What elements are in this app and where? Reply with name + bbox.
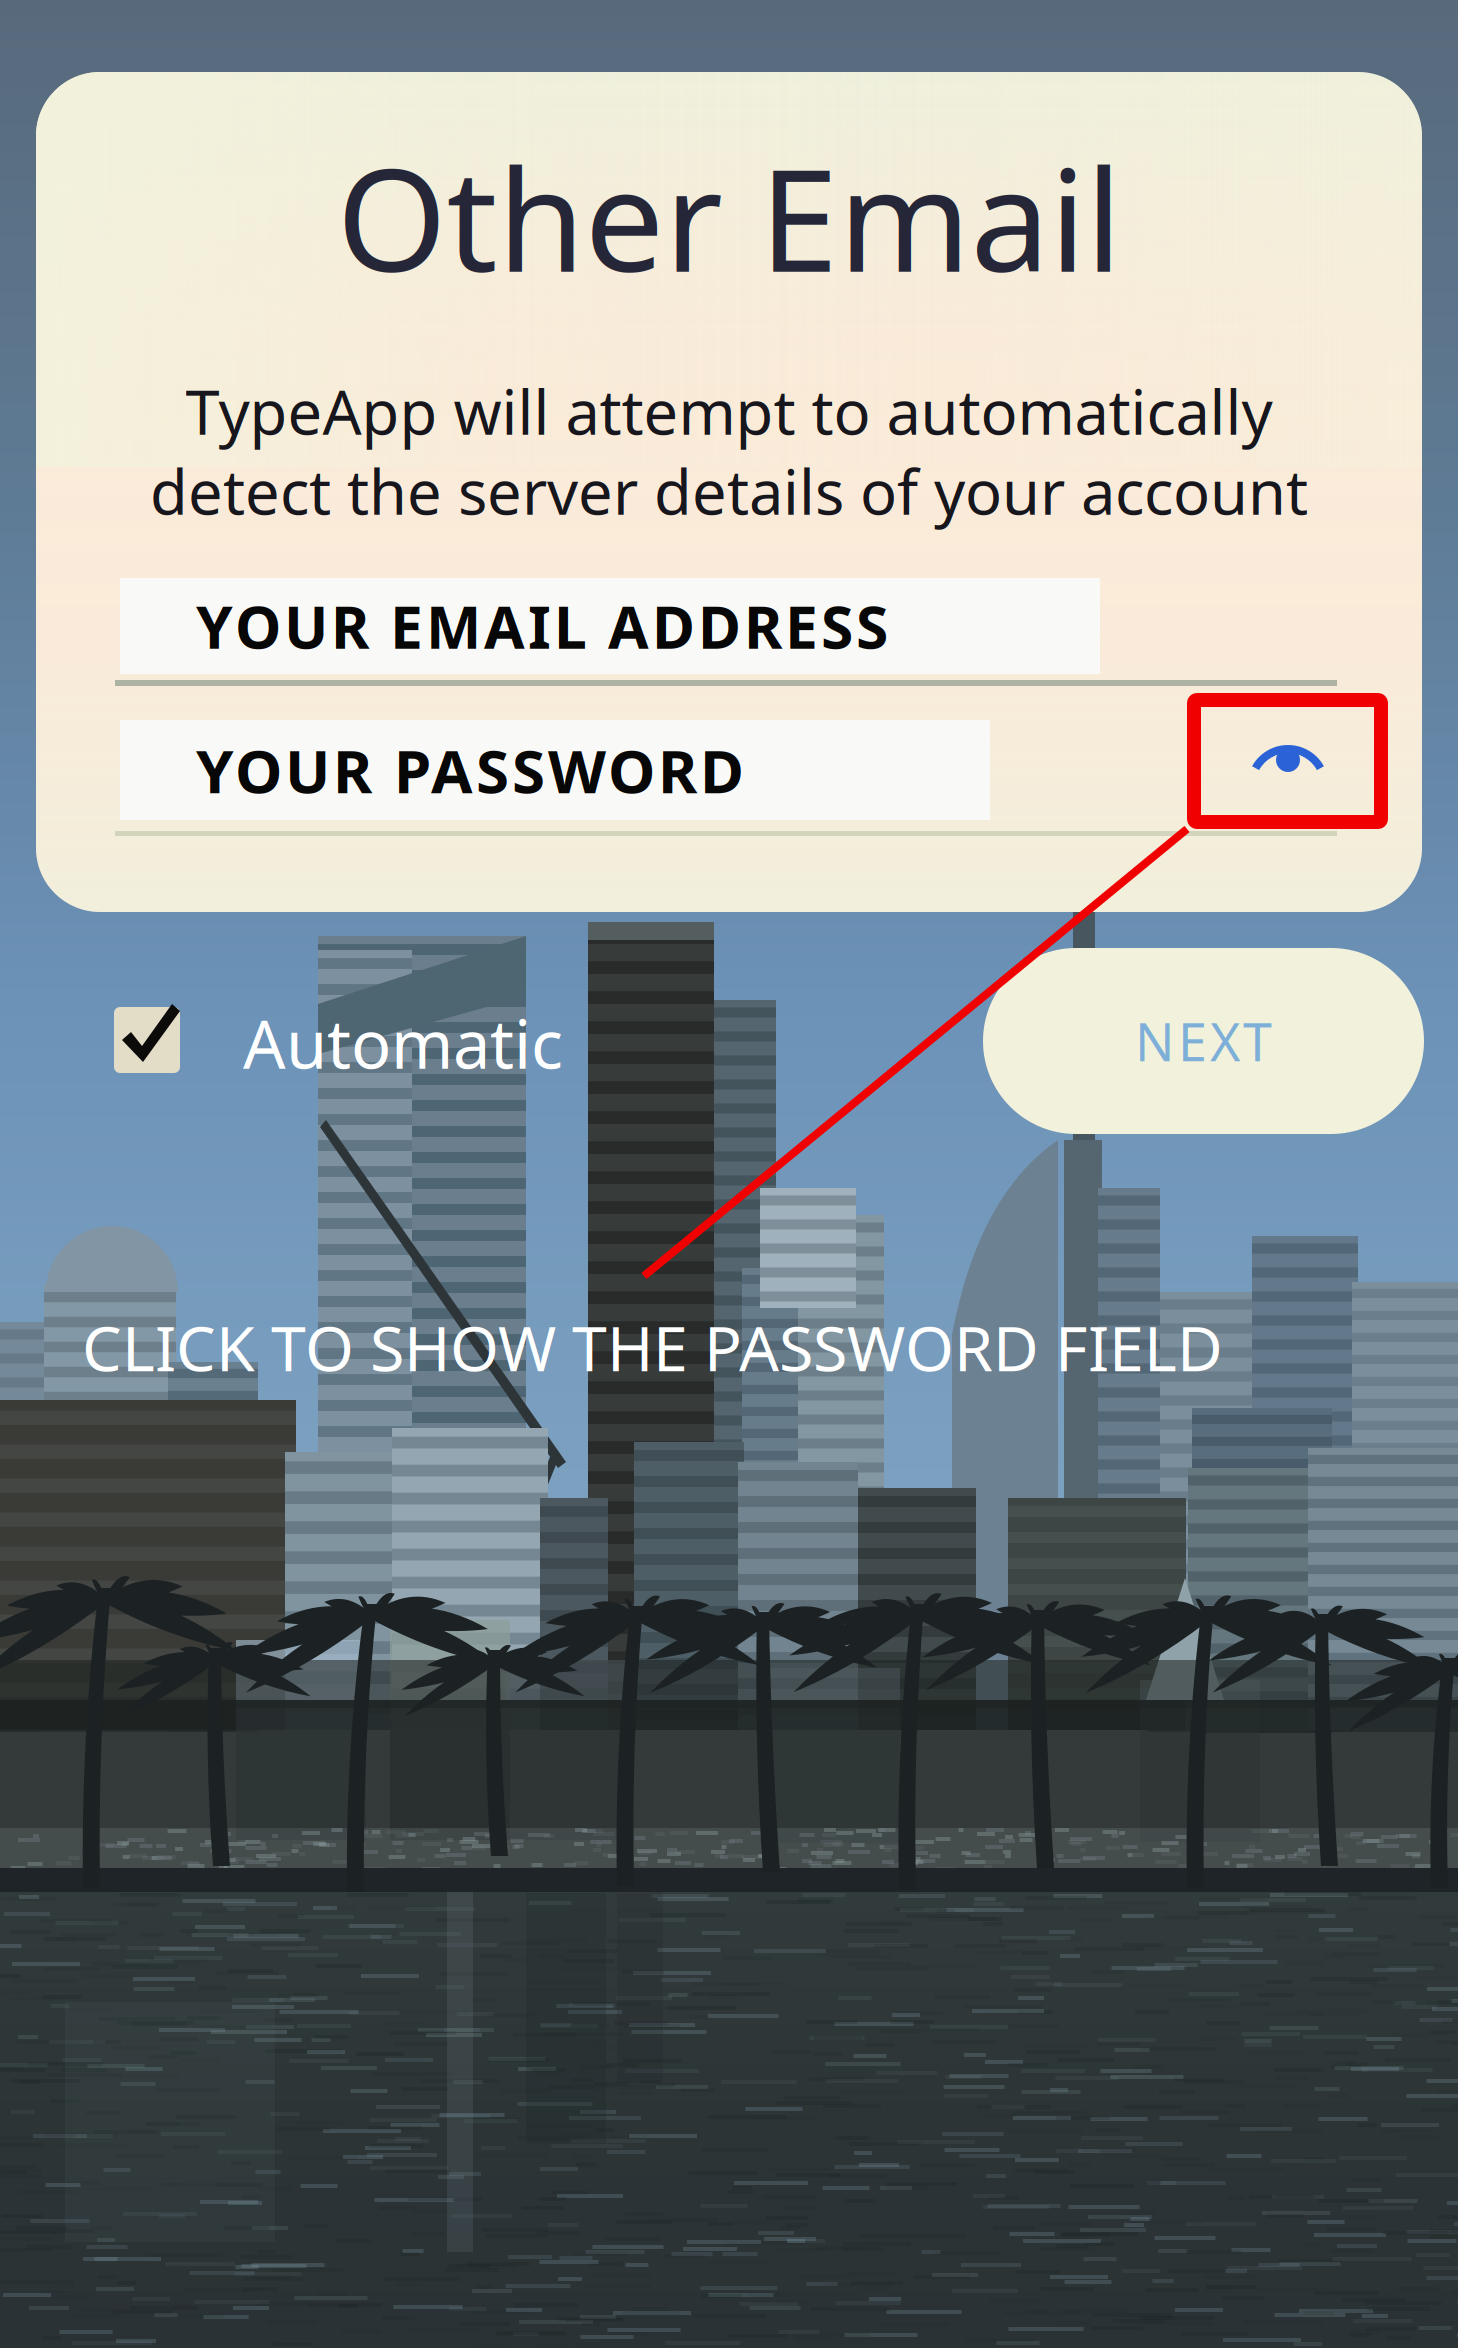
staticText: Other Email [336,123,1121,311]
staticText: NEXT [1135,1006,1272,1076]
staticText: YOUR EMAIL ADDRESS [196,587,888,665]
staticText: detect the server details of your accoun… [150,450,1308,532]
button[interactable]: NEXT [983,948,1424,1134]
staticText: CLICK TO SHOW THE PASSWORD FIELD [82,1305,1223,1389]
staticText: YOUR PASSWORD [196,730,744,810]
button[interactable]: Show password [1243,730,1333,792]
staticText: TypeApp will attempt to automatically [185,370,1272,452]
button[interactable]: Automatic [100,995,590,1091]
staticText: Automatic [243,999,563,1087]
